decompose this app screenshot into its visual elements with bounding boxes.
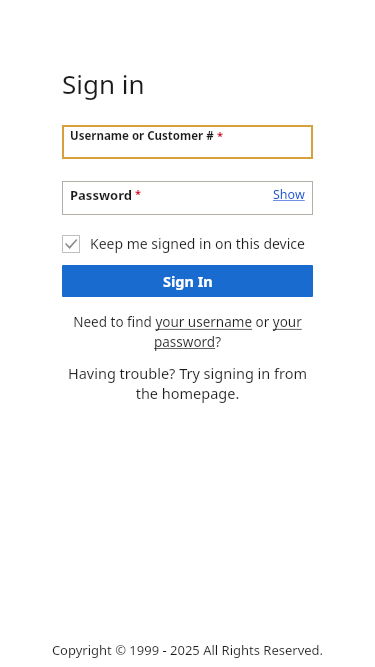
staticText: * xyxy=(217,128,223,143)
button[interactable]: Username or Customer # xyxy=(62,125,313,159)
staticText: Copyright © 1999 - 2025 All Rights Reser… xyxy=(0,641,375,659)
staticText: Show xyxy=(273,186,305,203)
button[interactable]: Need to find your username or your passw… xyxy=(62,313,313,351)
staticText: Password xyxy=(70,186,132,204)
staticText: Sign in xyxy=(62,66,145,101)
staticText: Having trouble? Try signing in from the … xyxy=(62,363,313,403)
staticText: Sign In xyxy=(163,271,213,291)
staticText: Need to find your username or your passw… xyxy=(62,313,313,351)
staticText: Username or Customer # xyxy=(70,128,214,144)
button[interactable]: Keep me signed in on this device xyxy=(62,234,313,253)
staticText: Keep me signed in on this device xyxy=(90,234,305,253)
button[interactable]: Show xyxy=(273,186,305,203)
staticText: * xyxy=(135,186,141,201)
button[interactable]: Password xyxy=(62,181,313,215)
button[interactable]: Sign In xyxy=(62,265,313,297)
